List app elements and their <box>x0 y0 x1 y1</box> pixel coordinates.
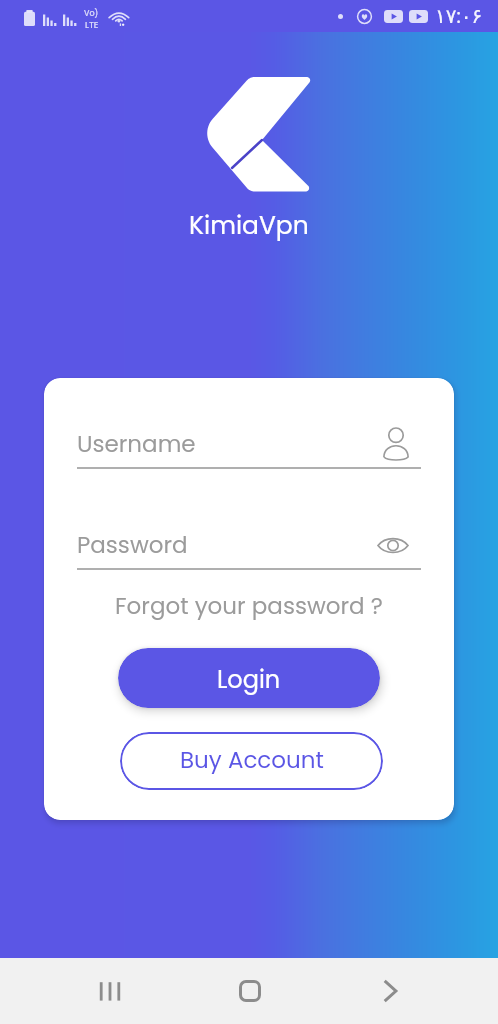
button[interactable]: Home <box>220 970 280 1012</box>
staticText: Buy Account <box>180 744 324 776</box>
staticText: Password <box>77 529 377 561</box>
staticText: Username <box>77 428 383 460</box>
button[interactable]: Forgot your password ? <box>105 586 393 626</box>
staticText: Login <box>217 663 281 697</box>
staticText: ۱۷:۰۶ <box>435 2 483 30</box>
button[interactable]: Back <box>360 970 420 1012</box>
staticText: LTE <box>85 19 99 32</box>
button[interactable]: Login <box>118 648 380 708</box>
staticText: Forgot your password ? <box>115 590 383 622</box>
staticText: Vo) <box>84 8 99 19</box>
staticText: KimiaVpn <box>189 208 309 243</box>
button[interactable]: Recent apps <box>80 970 140 1012</box>
button[interactable]: Buy Account <box>120 732 383 790</box>
